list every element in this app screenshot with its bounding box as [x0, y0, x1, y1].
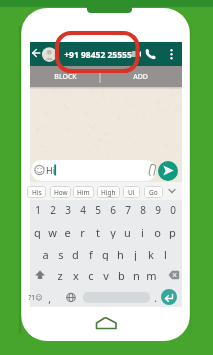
- staticText: BLOCK: [54, 72, 77, 82]
- staticText: h: [117, 247, 124, 261]
- staticText: z: [57, 268, 63, 282]
- staticText: m: [146, 268, 157, 282]
- button[interactable]: Ui: [123, 186, 140, 198]
- staticText: a: [42, 247, 49, 261]
- button[interactable]: High: [97, 186, 120, 198]
- button[interactable]: 2: [45, 203, 60, 217]
- staticText: v: [103, 268, 109, 282]
- button[interactable]: c: [83, 268, 98, 282]
- staticText: o: [154, 225, 161, 239]
- button[interactable]: BLOCK: [30, 66, 100, 87]
- button[interactable]: w: [45, 225, 60, 239]
- staticText: x: [73, 268, 79, 282]
- staticText: y: [110, 225, 116, 239]
- button[interactable]: z: [52, 268, 67, 282]
- button[interactable]: [131, 42, 145, 66]
- staticText: n: [133, 268, 140, 282]
- staticText: Go: [149, 188, 158, 197]
- button[interactable]: 4: [75, 203, 90, 217]
- button[interactable]: p: [165, 225, 180, 239]
- staticText: 9: [155, 203, 161, 217]
- button[interactable]: n: [129, 268, 144, 282]
- staticText: e: [64, 225, 71, 239]
- button[interactable]: e: [60, 225, 75, 239]
- staticText: Him: [77, 188, 90, 197]
- button[interactable]: Him: [73, 186, 94, 198]
- button[interactable]: d: [68, 247, 83, 261]
- staticText: 5: [95, 203, 101, 217]
- button[interactable]: f: [83, 247, 98, 261]
- staticText: l: [164, 247, 167, 261]
- button[interactable]: k: [143, 247, 158, 261]
- staticText: b: [118, 268, 125, 282]
- button[interactable]: a: [38, 247, 53, 261]
- staticText: How: [54, 188, 68, 197]
- button[interactable]: 8: [135, 203, 150, 217]
- button[interactable]: 1: [30, 203, 45, 217]
- button[interactable]: [30, 42, 44, 66]
- button[interactable]: .: [148, 291, 163, 305]
- staticText: f: [89, 247, 93, 261]
- button[interactable]: g: [98, 247, 113, 261]
- staticText: g: [102, 247, 109, 261]
- button[interactable]: [58, 42, 128, 66]
- button[interactable]: [83, 292, 150, 303]
- button[interactable]: y: [105, 225, 120, 239]
- button[interactable]: j: [128, 247, 143, 261]
- staticText: 0: [170, 203, 176, 217]
- button[interactable]: r: [75, 225, 90, 239]
- staticText: t: [96, 225, 100, 239]
- button[interactable]: [145, 42, 159, 66]
- staticText: High: [101, 188, 116, 197]
- button[interactable]: 0: [165, 203, 180, 217]
- button[interactable]: ?1☺: [27, 291, 44, 305]
- button[interactable]: l: [158, 247, 173, 261]
- staticText: w: [48, 225, 57, 239]
- staticText: 2: [50, 203, 56, 217]
- button[interactable]: q: [30, 225, 45, 239]
- staticText: 6: [110, 203, 116, 217]
- staticText: 4: [80, 203, 86, 217]
- button[interactable]: How: [50, 186, 71, 198]
- button[interactable]: 5: [90, 203, 105, 217]
- staticText: q: [34, 225, 41, 239]
- button[interactable]: 3: [60, 203, 75, 217]
- button[interactable]: m: [144, 268, 159, 282]
- staticText: His: [32, 188, 42, 197]
- staticText: 1: [35, 203, 41, 217]
- button[interactable]: ,: [42, 292, 57, 306]
- button[interactable]: [31, 160, 156, 181]
- staticText: d: [72, 247, 79, 261]
- button[interactable]: u: [120, 225, 135, 239]
- staticText: +91 98452 25555: [64, 49, 132, 61]
- staticText: 3: [65, 203, 71, 217]
- button[interactable]: b: [114, 268, 129, 282]
- button[interactable]: 7: [120, 203, 135, 217]
- staticText: .: [154, 291, 157, 305]
- button[interactable]: [165, 42, 178, 66]
- button[interactable]: 9: [150, 203, 165, 217]
- staticText: 8: [140, 203, 146, 217]
- button[interactable]: [158, 161, 178, 181]
- staticText: Hi: [46, 164, 55, 176]
- button[interactable]: ADD: [100, 66, 181, 87]
- button[interactable]: i: [135, 225, 150, 239]
- button[interactable]: Go: [144, 186, 163, 198]
- button[interactable]: 6: [105, 203, 120, 217]
- staticText: ADD: [133, 72, 148, 82]
- staticText: r: [80, 225, 85, 239]
- staticText: 7: [125, 203, 131, 217]
- button[interactable]: x: [68, 268, 83, 282]
- staticText: k: [148, 247, 154, 261]
- button[interactable]: o: [150, 225, 165, 239]
- staticText: ?1☺: [28, 293, 43, 303]
- button[interactable]: h: [113, 247, 128, 261]
- button[interactable]: s: [53, 247, 68, 261]
- button[interactable]: His: [27, 186, 46, 198]
- staticText: u: [124, 225, 131, 239]
- button[interactable]: [161, 289, 177, 305]
- button[interactable]: v: [98, 268, 113, 282]
- staticText: s: [58, 247, 64, 261]
- staticText: c: [88, 268, 94, 282]
- button[interactable]: t: [90, 225, 105, 239]
